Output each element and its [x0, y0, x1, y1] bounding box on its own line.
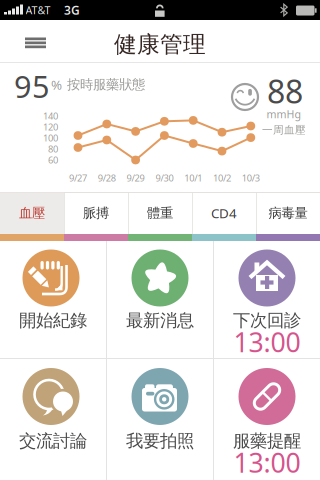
button[interactable]: 最新消息	[107, 241, 213, 358]
staticText: 服藥提醒	[233, 430, 301, 452]
staticText: 100	[43, 132, 58, 144]
staticText: 9/29	[127, 172, 145, 184]
staticText: 60	[48, 154, 58, 166]
button[interactable]: 下次回診	[214, 241, 320, 358]
staticText: 病毒量	[268, 205, 307, 221]
button[interactable]: 血壓	[0, 192, 64, 234]
staticText: 10/2	[213, 172, 231, 184]
staticText: 一周血壓	[262, 123, 306, 136]
staticText: 下次回診	[233, 310, 301, 331]
staticText: 95	[14, 66, 50, 106]
staticText: AT&T	[25, 3, 50, 17]
staticText: 9/30	[155, 172, 173, 184]
staticText: 最新消息	[126, 310, 194, 331]
staticText: 10/1	[184, 172, 202, 184]
button[interactable]: CD4	[192, 192, 256, 234]
button[interactable]: 脈搏	[64, 192, 128, 234]
button[interactable]	[0, 20, 64, 63]
button[interactable]: 開始紀錄	[0, 241, 106, 358]
button[interactable]: 我要拍照	[107, 359, 213, 480]
staticText: 88	[267, 70, 303, 112]
button[interactable]: 體重	[128, 192, 192, 234]
staticText: mmHg	[266, 107, 301, 121]
staticText: 脈搏	[83, 205, 109, 221]
staticText: 開始紀錄	[19, 310, 87, 331]
staticText: 交流討論	[19, 430, 87, 452]
staticText: 9/28	[98, 172, 116, 184]
staticText: 9/27	[69, 172, 87, 184]
staticText: 血壓	[19, 205, 45, 221]
staticText: 13:00	[233, 324, 300, 360]
button[interactable]: 交流討論	[0, 359, 106, 480]
staticText: 13:00	[233, 445, 300, 480]
button[interactable]: 病毒量	[256, 192, 320, 234]
staticText: CD4	[211, 204, 237, 222]
staticText: 10/3	[242, 172, 260, 184]
staticText: 140	[43, 110, 58, 122]
staticText: 120	[43, 121, 58, 133]
staticText: 按時服藥狀態	[67, 76, 145, 93]
staticText: 健康管理	[114, 31, 206, 58]
staticText: %	[51, 76, 62, 93]
button[interactable]: 服藥提醒	[214, 359, 320, 480]
staticText: 體重	[147, 205, 173, 221]
staticText: 80	[48, 143, 58, 155]
staticText: 我要拍照	[126, 430, 194, 452]
staticText: 3G	[64, 2, 80, 18]
